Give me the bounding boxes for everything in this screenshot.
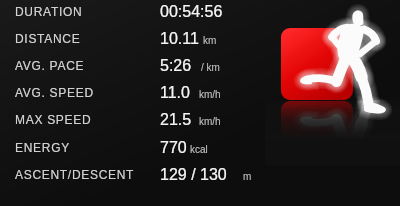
staticText: AVG. SPEED <box>15 86 94 99</box>
button[interactable]: AVG. SPEED <box>0 79 272 106</box>
button[interactable]: AVG. PACE <box>0 52 272 79</box>
staticText: km/h <box>199 116 221 127</box>
staticText: 21.5 <box>160 111 192 129</box>
button[interactable]: ENERGY <box>0 134 272 161</box>
staticText: AVG. PACE <box>15 59 85 72</box>
staticText: m <box>243 171 252 182</box>
staticText: / km <box>201 62 220 73</box>
button[interactable]: ASCENT/DESCENT <box>0 161 272 188</box>
staticText: km/h <box>199 89 221 100</box>
staticText: DURATION <box>15 5 83 18</box>
staticText: 10.11 <box>160 30 199 48</box>
button[interactable]: MAX SPEED <box>0 106 272 133</box>
staticText: 00:54:56 <box>160 3 223 21</box>
staticText: MAX SPEED <box>15 113 92 126</box>
staticText: 129 / 130 <box>160 166 227 184</box>
staticText: ASCENT/DESCENT <box>15 168 135 181</box>
staticText: DISTANCE <box>15 32 81 45</box>
button[interactable]: DISTANCE <box>0 25 272 52</box>
staticText: 11.0 <box>160 84 190 102</box>
button[interactable]: DURATION <box>0 0 272 25</box>
staticText: kcal <box>190 144 208 155</box>
staticText: 770 <box>160 139 187 157</box>
staticText: km <box>203 35 217 46</box>
staticText: ENERGY <box>15 141 70 154</box>
staticText: 5:26 <box>160 57 192 75</box>
